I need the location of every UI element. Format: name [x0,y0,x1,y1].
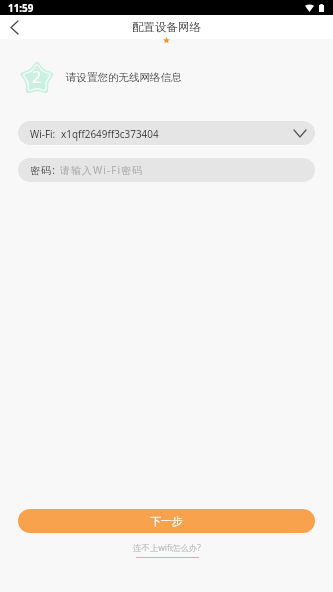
button[interactable]: 密码: [18,158,315,182]
staticText: x1qff2649ff3c373404 [61,127,159,140]
staticText: 请设置您的无线网络信息 [66,71,182,84]
button[interactable]: Back [0,15,28,39]
staticText: 2 [32,66,42,88]
staticText: 下一步 [150,514,183,528]
staticText: 配置设备网络 [132,20,201,34]
button[interactable]: 下一步 [18,509,315,533]
button[interactable]: 连不上wifi怎么办? [133,542,201,558]
staticText: 请输入Wi-Fi密码 [60,163,144,177]
staticText: 密码: [30,163,57,177]
button[interactable]: Wi-Fi: [18,121,315,145]
staticText: 连不上wifi怎么办? [133,542,201,553]
staticText: 11:59 [8,1,34,14]
staticText: Wi-Fi: [30,127,56,140]
